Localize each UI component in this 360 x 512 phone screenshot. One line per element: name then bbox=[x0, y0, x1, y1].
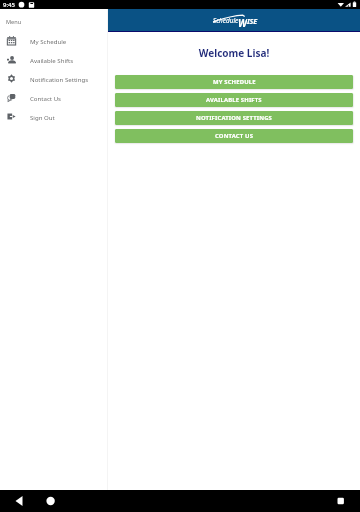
button[interactable]: Sign Out bbox=[0, 107, 107, 126]
button[interactable]: AVAILABLE SHIFTS bbox=[115, 93, 353, 107]
staticText: W bbox=[238, 16, 247, 27]
staticText: CONTACT US bbox=[215, 132, 254, 140]
button[interactable]: Notification Settings bbox=[0, 69, 107, 88]
button[interactable]: My Schedule bbox=[0, 31, 107, 50]
button[interactable]: Home bbox=[39, 490, 63, 512]
staticText: Schedule bbox=[213, 16, 239, 25]
staticText: Welcome Lisa! bbox=[108, 46, 360, 60]
button[interactable]: Available Shifts bbox=[0, 50, 107, 69]
staticText: NOTIFICATION SETTINGS bbox=[196, 114, 273, 122]
button[interactable]: NOTIFICATION SETTINGS bbox=[115, 111, 353, 125]
staticText: 9:45 bbox=[3, 1, 15, 9]
staticText: ISE bbox=[247, 16, 257, 26]
staticText: Sign Out bbox=[30, 113, 55, 121]
button[interactable]: MY SCHEDULE bbox=[115, 75, 353, 89]
button[interactable]: CONTACT US bbox=[115, 129, 353, 143]
staticText: MY SCHEDULE bbox=[213, 78, 256, 86]
staticText: AVAILABLE SHIFTS bbox=[206, 96, 262, 104]
staticText: Available Shifts bbox=[30, 56, 74, 64]
staticText: My Schedule bbox=[30, 37, 67, 45]
staticText: Notification Settings bbox=[30, 75, 89, 83]
staticText: Contact Us bbox=[30, 94, 62, 102]
staticText: Menu bbox=[6, 18, 22, 26]
button[interactable]: Recent apps bbox=[329, 490, 353, 512]
button[interactable]: Back bbox=[8, 490, 32, 512]
button[interactable]: Contact Us bbox=[0, 88, 107, 107]
